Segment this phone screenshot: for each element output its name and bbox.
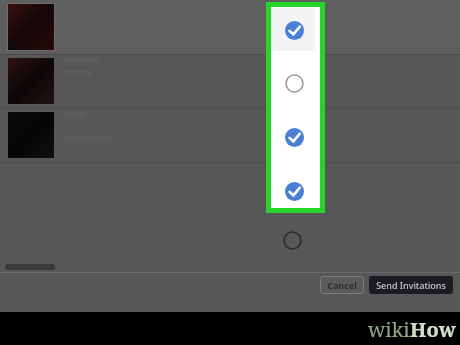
button[interactable]: Send Invitations — [369, 276, 453, 294]
button[interactable] — [0, 0, 460, 54]
button[interactable]: Not selected — [283, 231, 302, 250]
button[interactable]: Cancel — [320, 276, 364, 294]
staticText: wiki — [368, 316, 410, 343]
staticText: Cancel — [327, 279, 357, 291]
button[interactable]: Selected — [285, 128, 304, 147]
button[interactable]: Selected — [285, 21, 304, 40]
button[interactable]: Selected — [285, 182, 304, 201]
staticText: Send Invitations — [376, 279, 446, 291]
staticText: How — [410, 316, 456, 343]
button[interactable]: Not selected — [285, 74, 304, 93]
